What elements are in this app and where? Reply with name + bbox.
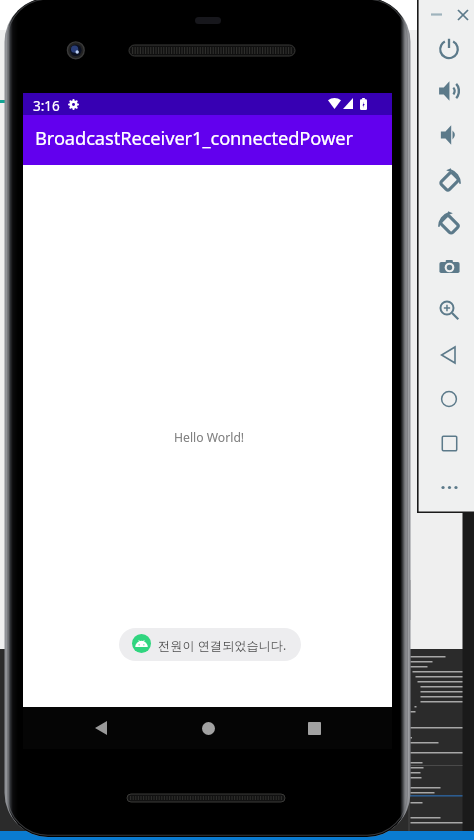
button[interactable]: Recent apps <box>293 707 335 749</box>
button[interactable]: Rotate right <box>435 208 463 236</box>
button[interactable]: Rotate left <box>435 165 463 193</box>
button[interactable]: Power <box>435 34 463 62</box>
button[interactable]: Screenshot <box>435 253 463 281</box>
button[interactable]: Volume down <box>435 121 463 149</box>
button[interactable]: Volume up <box>435 77 463 105</box>
button[interactable]: Back <box>80 707 122 749</box>
button[interactable]: Recent apps <box>435 429 463 457</box>
button[interactable]: Home <box>435 385 463 413</box>
button[interactable]: Zoom <box>435 296 463 324</box>
staticText: BroadcastReceiver1_connectedPower <box>35 125 353 150</box>
button[interactable]: Back <box>435 341 463 369</box>
button[interactable]: 전원이 연결되었습니다. <box>119 628 301 661</box>
staticText: Hello World! <box>174 429 245 446</box>
button[interactable]: BroadcastReceiver1_connectedPower <box>23 115 392 165</box>
button[interactable]: Minimize <box>428 6 445 23</box>
staticText: 전원이 연결되었습니다. <box>158 637 287 654</box>
staticText: 3:16 <box>33 97 60 115</box>
button[interactable]: Close <box>454 6 471 23</box>
button[interactable]: Home <box>187 707 229 749</box>
button[interactable]: More <box>435 473 463 501</box>
